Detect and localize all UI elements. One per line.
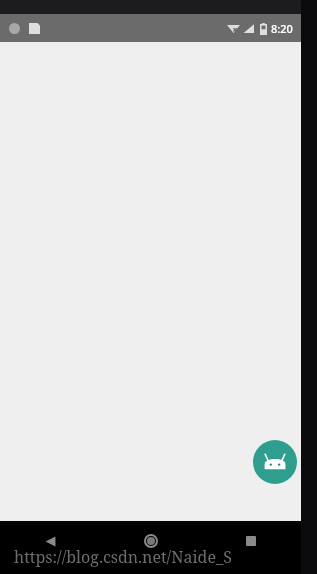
staticText: 8:20: [271, 21, 293, 36]
button[interactable]: Back: [0, 526, 101, 556]
button[interactable]: Recent apps: [201, 526, 301, 556]
button[interactable]: Home: [101, 526, 201, 556]
staticText: https://blog.csdn.net/Naide_S: [14, 546, 233, 568]
button[interactable]: Android robot action: [253, 440, 297, 484]
